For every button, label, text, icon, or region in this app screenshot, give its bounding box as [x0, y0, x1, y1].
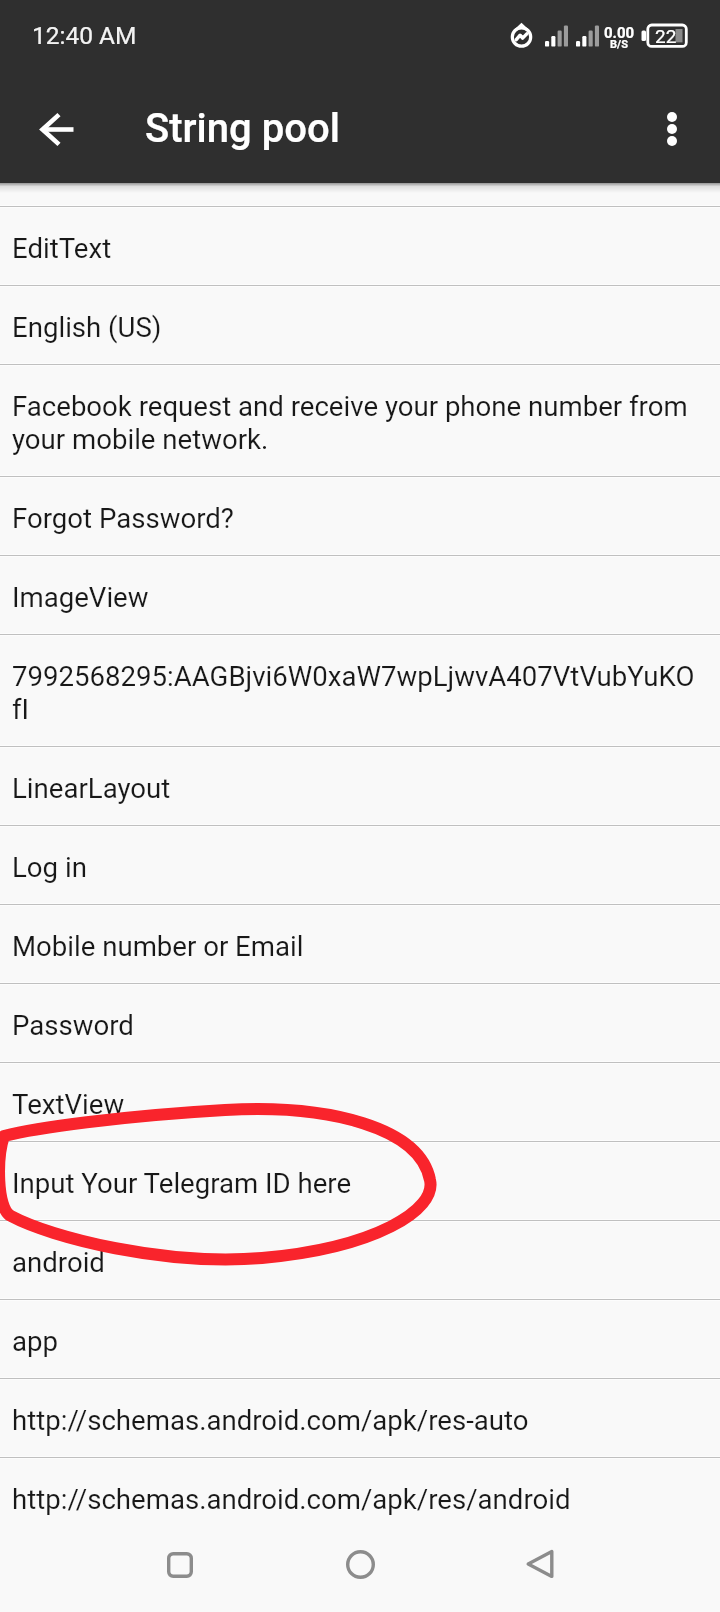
button[interactable]: LinearLayout: [0, 748, 720, 824]
button[interactable]: TextView: [0, 1064, 720, 1140]
button[interactable]: Home: [315, 1538, 405, 1590]
staticText: Facebook request and receive your phone …: [12, 390, 701, 456]
button[interactable]: Navigate up: [14, 93, 100, 165]
button[interactable]: More options: [636, 93, 708, 165]
staticText: Input Your Telegram ID here: [12, 1167, 352, 1200]
button[interactable]: http://schemas.android.com/apk/res-auto: [0, 1380, 720, 1456]
button[interactable]: Facebook request and receive your phone …: [0, 366, 720, 475]
staticText: English (US): [12, 311, 162, 344]
staticText: B/S: [610, 38, 628, 51]
staticText: app: [12, 1325, 58, 1358]
button[interactable]: Mobile number or Email: [0, 906, 720, 982]
staticText: EditText: [12, 232, 112, 265]
button[interactable]: Password: [0, 985, 720, 1061]
button[interactable]: EditText: [0, 208, 720, 284]
staticText: TextView: [12, 1088, 125, 1121]
staticText: 7992568295:AAGBjvi6W0xaW7wpLjwvA407VtVub…: [12, 660, 701, 726]
button[interactable]: Input Your Telegram ID here: [0, 1143, 720, 1219]
button[interactable]: Recent apps: [135, 1539, 225, 1591]
button[interactable]: English (US): [0, 287, 720, 363]
staticText: LinearLayout: [12, 772, 171, 805]
staticText: Password: [12, 1009, 134, 1042]
button[interactable]: http://schemas.android.com/apk/res/andro…: [0, 1459, 720, 1535]
staticText: android: [12, 1246, 105, 1279]
staticText: http://schemas.android.com/apk/res-auto: [12, 1404, 529, 1437]
button[interactable]: Back: [495, 1538, 585, 1590]
staticText: Log in: [12, 851, 87, 884]
staticText: 22: [655, 25, 677, 47]
button[interactable]: Log in: [0, 827, 720, 903]
button[interactable]: app: [0, 1301, 720, 1377]
staticText: 12:40 AM: [32, 21, 137, 50]
staticText: Forgot Password?: [12, 502, 234, 535]
button[interactable]: Forgot Password?: [0, 478, 720, 554]
staticText: String pool: [145, 105, 340, 152]
staticText: ImageView: [12, 581, 149, 614]
button[interactable]: android: [0, 1222, 720, 1298]
staticText: http://schemas.android.com/apk/res/andro…: [12, 1483, 571, 1516]
staticText: Mobile number or Email: [12, 930, 304, 963]
button[interactable]: 7992568295:AAGBjvi6W0xaW7wpLjwvA407VtVub…: [0, 636, 720, 745]
staticText: 0.00: [604, 24, 635, 42]
button[interactable]: ImageView: [0, 557, 720, 633]
